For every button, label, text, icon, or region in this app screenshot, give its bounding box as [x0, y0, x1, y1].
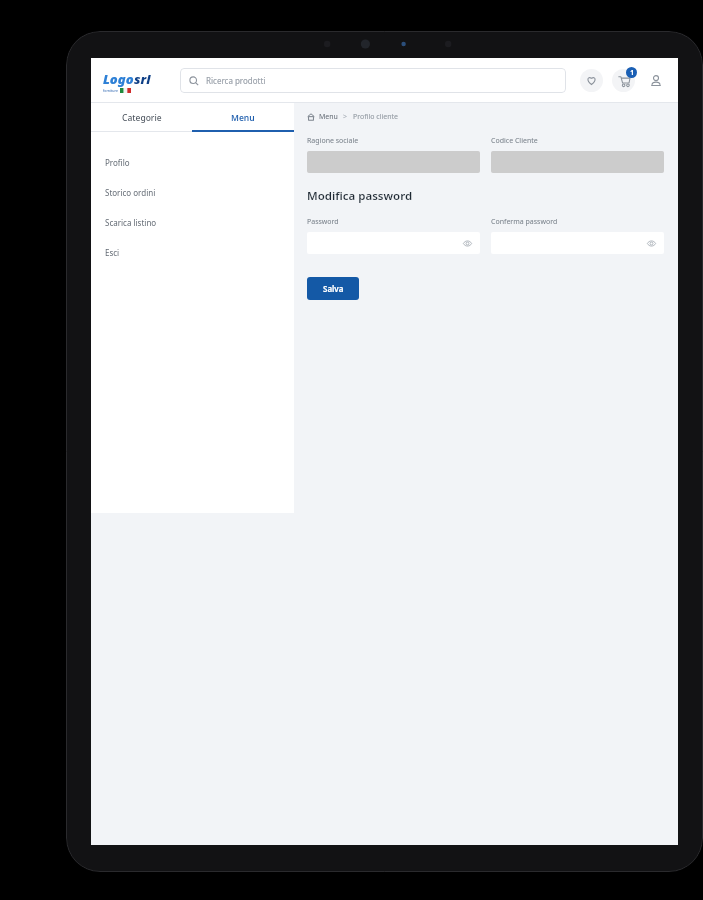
staticText: Logo	[103, 70, 134, 88]
button[interactable]: Categorie	[91, 103, 192, 132]
staticText: Salva	[323, 283, 344, 294]
button[interactable]: Profilo	[91, 147, 294, 177]
staticText: 1	[630, 68, 634, 77]
button[interactable]: Scarica listino	[91, 207, 294, 237]
staticText: Modifica password	[307, 188, 413, 204]
staticText: Storico ordini	[105, 187, 156, 198]
staticText: Conferma password	[491, 217, 558, 227]
button[interactable]: Storico ordini	[91, 177, 294, 207]
button[interactable]: Logo home	[103, 67, 158, 95]
button[interactable]: Menu	[319, 112, 338, 122]
button[interactable]: Mostra password	[646, 238, 657, 249]
staticText: Ragione sociale	[307, 136, 359, 146]
staticText: Categorie	[122, 112, 162, 124]
staticText: forniture	[103, 88, 118, 93]
button[interactable]: Esci	[91, 237, 294, 267]
staticText: srl	[134, 70, 151, 88]
staticText: Esci	[105, 247, 120, 258]
staticText: Codice Cliente	[491, 136, 538, 146]
staticText: Password	[307, 217, 339, 227]
staticText: Menu	[319, 112, 338, 122]
button[interactable]: Menu	[192, 103, 294, 132]
button[interactable]: Mostra password	[491, 232, 664, 254]
staticText: Scarica listino	[105, 217, 157, 228]
staticText: Profilo	[105, 157, 130, 168]
button[interactable]: Carrello, 1 articolo	[612, 69, 635, 92]
button[interactable]: Mostra password	[307, 232, 480, 254]
button[interactable]: Mostra password	[462, 238, 473, 249]
staticText: >	[343, 112, 348, 122]
staticText: Profilo cliente	[353, 112, 399, 122]
staticText: Ricerca prodotti	[206, 75, 266, 86]
button[interactable]: Account	[646, 71, 666, 91]
staticText: Menu	[231, 112, 255, 124]
button[interactable]: Salva	[307, 277, 359, 300]
button[interactable]: Preferiti	[580, 69, 603, 92]
button[interactable]: Ricerca prodotti	[180, 68, 566, 93]
